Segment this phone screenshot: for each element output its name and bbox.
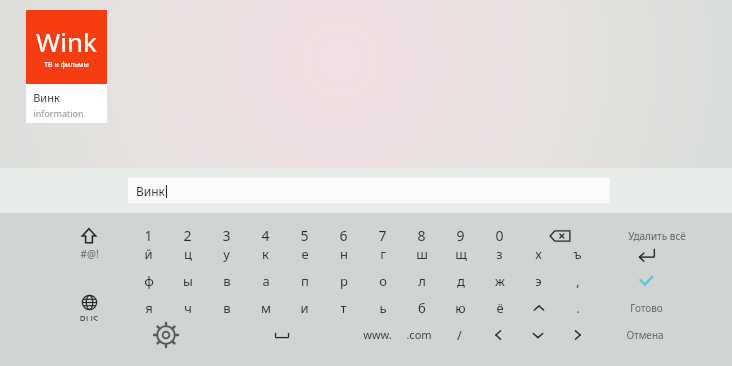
staticText: Винк: [136, 183, 165, 199]
staticText: ц: [184, 245, 192, 263]
button[interactable]: п: [285, 267, 324, 294]
button[interactable]: #@!: [70, 240, 108, 267]
staticText: ш: [416, 245, 428, 263]
button[interactable]: э: [519, 267, 558, 294]
button[interactable]: д: [441, 267, 480, 294]
button[interactable]: Wink: [26, 10, 107, 84]
button[interactable]: 3: [207, 222, 246, 249]
button[interactable]: Enter: [616, 240, 676, 267]
staticText: 2: [183, 226, 192, 245]
staticText: ё: [496, 299, 504, 317]
button[interactable]: а: [246, 267, 285, 294]
staticText: ъ: [573, 245, 582, 263]
button[interactable]: .com: [398, 321, 440, 348]
staticText: 7: [378, 226, 387, 245]
button[interactable]: Space: [263, 321, 301, 348]
button[interactable]: .: [558, 294, 597, 321]
button[interactable]: Shift: [70, 222, 108, 249]
staticText: х: [535, 245, 542, 263]
button[interactable]: к: [246, 240, 285, 267]
staticText: е: [301, 245, 309, 263]
button[interactable]: б: [402, 294, 441, 321]
button[interactable]: н: [324, 240, 363, 267]
button[interactable]: х: [519, 240, 558, 267]
button[interactable]: Up: [519, 294, 558, 321]
button[interactable]: RUS: [70, 294, 108, 321]
button[interactable]: г: [363, 240, 402, 267]
button[interactable]: м: [246, 294, 285, 321]
button[interactable]: Settings: [147, 321, 185, 348]
button[interactable]: р: [324, 267, 363, 294]
staticText: ТВ и фильмы: [44, 60, 89, 70]
button[interactable]: з: [480, 240, 519, 267]
staticText: з: [496, 245, 503, 263]
button[interactable]: ф: [129, 267, 168, 294]
button[interactable]: Done: [616, 267, 676, 294]
button[interactable]: ё: [480, 294, 519, 321]
staticText: www.: [363, 327, 392, 342]
staticText: ю: [455, 299, 466, 317]
staticText: к: [262, 245, 269, 263]
staticText: Wink: [36, 24, 97, 59]
staticText: ы: [183, 272, 193, 290]
button[interactable]: ч: [168, 294, 207, 321]
button[interactable]: Down: [518, 321, 557, 348]
staticText: 8: [417, 226, 426, 245]
button[interactable]: в: [207, 294, 246, 321]
button[interactable]: Отмена: [615, 321, 675, 348]
button[interactable]: щ: [441, 240, 480, 267]
button[interactable]: т: [324, 294, 363, 321]
button[interactable]: в: [207, 267, 246, 294]
button[interactable]: Left: [479, 321, 518, 348]
staticText: а: [262, 272, 270, 290]
button[interactable]: ш: [402, 240, 441, 267]
button[interactable]: у: [207, 240, 246, 267]
staticText: ч: [184, 299, 192, 317]
button[interactable]: ж: [480, 267, 519, 294]
staticText: information: [33, 107, 84, 119]
button[interactable]: Винк: [26, 84, 107, 123]
button[interactable]: е: [285, 240, 324, 267]
button[interactable]: ь: [363, 294, 402, 321]
staticText: э: [535, 272, 542, 290]
button[interactable]: 0: [480, 222, 519, 249]
staticText: н: [340, 245, 348, 263]
staticText: 0: [495, 226, 504, 245]
staticText: у: [223, 245, 230, 263]
button[interactable]: ц: [168, 240, 207, 267]
button[interactable]: 5: [285, 222, 324, 249]
button[interactable]: Готово: [616, 294, 676, 321]
button[interactable]: 4: [246, 222, 285, 249]
button[interactable]: /: [440, 321, 479, 348]
button[interactable]: о: [363, 267, 402, 294]
staticText: ь: [379, 299, 387, 317]
button[interactable]: й: [129, 240, 168, 267]
button[interactable]: я: [129, 294, 168, 321]
button[interactable]: 2: [168, 222, 207, 249]
button[interactable]: Удалить всё: [617, 222, 697, 249]
button[interactable]: Backspace: [540, 222, 580, 249]
button[interactable]: 9: [441, 222, 480, 249]
button[interactable]: 7: [363, 222, 402, 249]
button[interactable]: Винк: [128, 178, 610, 203]
staticText: л: [418, 272, 426, 290]
button[interactable]: 8: [402, 222, 441, 249]
button[interactable]: 1: [129, 222, 168, 249]
button[interactable]: л: [402, 267, 441, 294]
button[interactable]: 6: [324, 222, 363, 249]
staticText: .: [576, 299, 580, 317]
button[interactable]: ,: [558, 267, 597, 294]
button[interactable]: ъ: [558, 240, 597, 267]
staticText: .com: [406, 327, 432, 342]
button[interactable]: Right: [557, 321, 596, 348]
button[interactable]: ы: [168, 267, 207, 294]
staticText: RUS: [79, 313, 99, 321]
staticText: 4: [261, 226, 270, 245]
button[interactable]: и: [285, 294, 324, 321]
staticText: о: [379, 272, 387, 290]
button[interactable]: ю: [441, 294, 480, 321]
staticText: б: [418, 299, 426, 317]
button[interactable]: www.: [356, 321, 398, 348]
staticText: т: [340, 299, 347, 317]
staticText: 1: [144, 226, 153, 245]
